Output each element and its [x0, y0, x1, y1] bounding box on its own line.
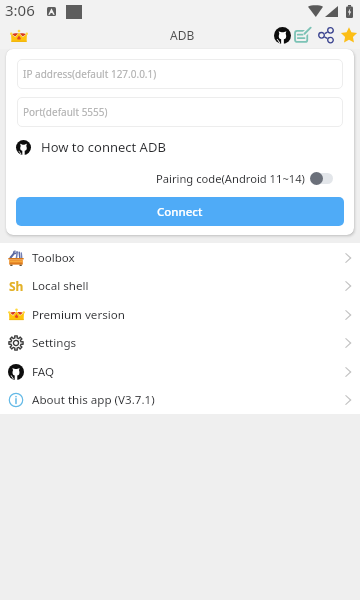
button[interactable]: Premium — [8, 24, 30, 49]
button[interactable]: GitHub — [272, 23, 293, 47]
button[interactable]: How to connect ADB — [6, 135, 176, 159]
staticText: Pairing code(Android 11~14) — [156, 171, 305, 186]
button[interactable]: Sh — [0, 272, 360, 300]
staticText: Sh — [9, 278, 24, 294]
staticText: Port(default 5555) — [23, 105, 108, 119]
staticText: How to connect ADB — [41, 138, 166, 156]
staticText: Toolbox — [32, 250, 75, 266]
button[interactable]: Settings — [0, 329, 360, 357]
staticText: ADB — [170, 27, 195, 43]
button[interactable]: Connect — [16, 197, 344, 226]
button[interactable]: Rate — [338, 23, 359, 47]
button[interactable]: Port(default 5555) — [17, 97, 343, 127]
button[interactable]: Share — [315, 23, 336, 47]
button[interactable]: IP address(default 127.0.0.1) — [17, 59, 343, 89]
staticText: 3:06 — [5, 0, 35, 20]
button[interactable]: Premium version — [0, 300, 360, 329]
staticText: About this app (V3.7.1) — [32, 392, 155, 408]
staticText: Settings — [32, 335, 77, 351]
staticText: Premium version — [32, 307, 125, 323]
button[interactable]: Feedback — [292, 23, 313, 47]
staticText: IP address(default 127.0.0.1) — [23, 67, 157, 81]
staticText: Connect — [157, 204, 203, 220]
button[interactable]: Toolbox — [0, 243, 360, 272]
button[interactable]: Pairing code toggle — [310, 172, 333, 185]
staticText: FAQ — [32, 364, 55, 380]
button[interactable]: FAQ — [0, 357, 360, 386]
staticText: Local shell — [32, 278, 89, 294]
button[interactable]: About this app (V3.7.1) — [0, 386, 360, 414]
